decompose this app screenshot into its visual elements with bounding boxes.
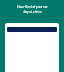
- staticText: day at a time: [23, 10, 42, 14]
- staticText: Hour Rent of your car: [17, 5, 48, 9]
